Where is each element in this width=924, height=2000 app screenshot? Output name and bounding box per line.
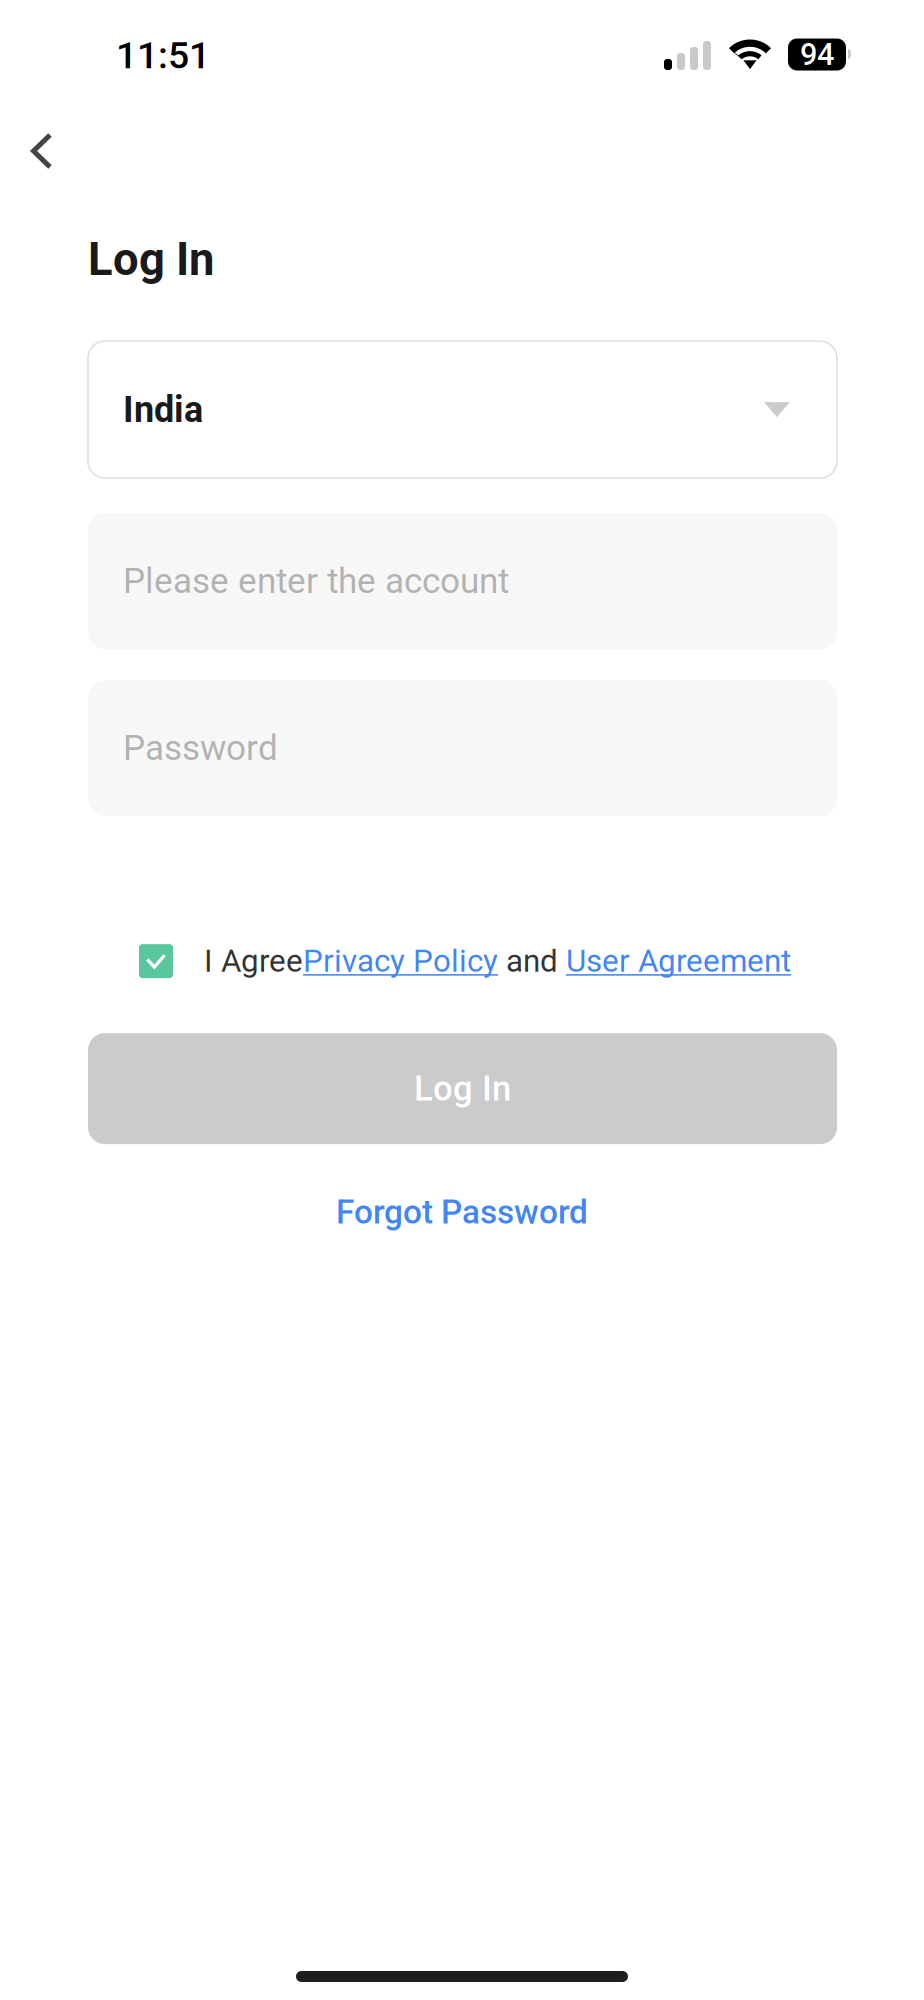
button[interactable]: India bbox=[88, 341, 837, 478]
staticText: User Agreement bbox=[566, 943, 791, 979]
button[interactable]: I agree to the terms bbox=[139, 944, 173, 978]
button[interactable]: Back bbox=[0, 114, 83, 188]
staticText: India bbox=[123, 388, 203, 431]
button[interactable]: Log In bbox=[88, 1033, 837, 1144]
staticText: Forgot Password bbox=[336, 1193, 588, 1232]
staticText: Privacy Policy bbox=[303, 943, 498, 979]
button[interactable]: Privacy Policy bbox=[303, 943, 498, 979]
staticText: Please enter the account bbox=[123, 561, 509, 602]
staticText: Log In bbox=[88, 233, 214, 286]
staticText: and bbox=[498, 943, 566, 979]
button[interactable]: User Agreement bbox=[566, 943, 791, 979]
staticText: Log In bbox=[414, 1068, 511, 1109]
staticText: Password bbox=[123, 728, 278, 769]
button[interactable]: Forgot Password bbox=[0, 1184, 924, 1240]
staticText: 94 bbox=[800, 36, 834, 72]
staticText: I Agree bbox=[204, 943, 303, 979]
staticText: 11:51 bbox=[116, 34, 210, 77]
